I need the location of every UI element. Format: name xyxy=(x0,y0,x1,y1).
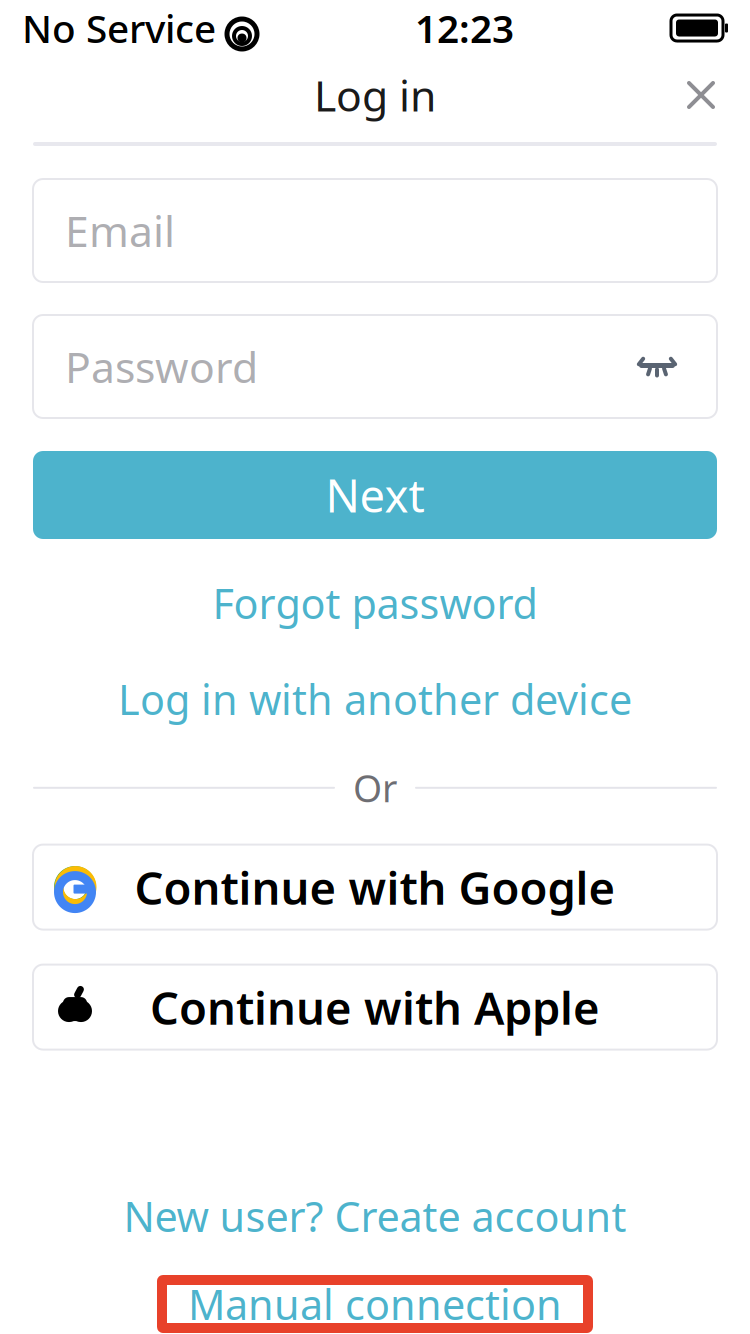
staticText: 12:23 xyxy=(415,2,514,54)
button[interactable]: Continue with Google xyxy=(33,845,717,930)
staticText: Continue with Google xyxy=(134,857,615,917)
staticText: No Service xyxy=(22,2,216,54)
staticText: New user? Create account xyxy=(123,1189,626,1243)
button[interactable]: Continue with Apple xyxy=(33,965,717,1050)
button[interactable]: Log in with another device xyxy=(33,667,717,731)
button[interactable]: Close xyxy=(670,64,732,126)
staticText: Next xyxy=(325,465,424,525)
button[interactable]: Manual connection xyxy=(162,1280,588,1328)
staticText: Forgot password xyxy=(212,576,537,630)
staticText: Manual connection xyxy=(188,1277,562,1331)
staticText: Or xyxy=(353,763,397,813)
staticText: Password xyxy=(65,338,258,395)
staticText: Continue with Apple xyxy=(150,977,600,1037)
staticText: Log in with another device xyxy=(118,672,632,726)
staticText: Email xyxy=(65,202,175,259)
button[interactable]: Forgot password xyxy=(33,571,717,635)
button[interactable]: Next xyxy=(33,451,717,539)
button[interactable]: New user? Create account xyxy=(33,1186,717,1246)
button[interactable]: Show password xyxy=(629,338,685,394)
staticText: Log in xyxy=(314,67,436,123)
